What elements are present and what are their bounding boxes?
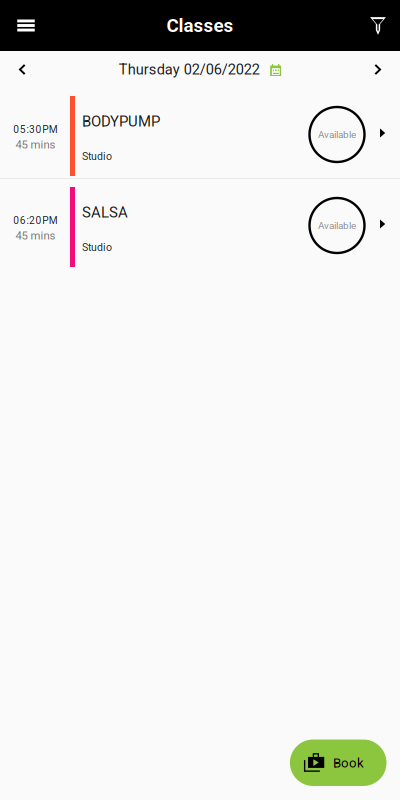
staticText: Studio — [82, 241, 112, 254]
staticText: 45 mins — [15, 138, 55, 151]
button[interactable]: 06:20PM — [0, 179, 400, 269]
button[interactable]: Next day — [356, 51, 400, 88]
button[interactable]: 05:30PM — [0, 88, 400, 178]
button[interactable]: Menu — [0, 0, 52, 51]
staticText: 05:30PM — [13, 124, 58, 136]
button[interactable]: Thursday 02/06/2022 — [113, 51, 287, 88]
button[interactable]: Book — [290, 739, 386, 786]
staticText: 45 mins — [15, 229, 55, 242]
staticText: Available — [318, 220, 356, 231]
staticText: Thursday 02/06/2022 — [119, 61, 260, 78]
staticText: Available — [318, 129, 356, 140]
button[interactable]: Filter — [356, 0, 400, 51]
staticText: BODYPUMP — [82, 113, 160, 130]
staticText: Studio — [82, 150, 112, 163]
staticText: Book — [333, 755, 364, 771]
staticText: 06:20PM — [13, 215, 58, 227]
button[interactable]: Previous day — [0, 51, 44, 88]
staticText: Classes — [166, 14, 233, 36]
staticText: SALSA — [82, 204, 128, 221]
